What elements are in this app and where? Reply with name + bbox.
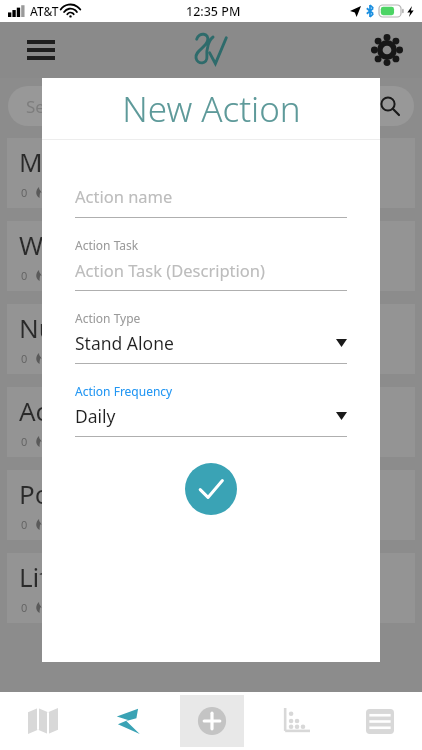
button[interactable]: Activity [7, 387, 415, 457]
button[interactable]: Settings [366, 29, 408, 71]
button[interactable]: Lifting [7, 553, 415, 623]
button[interactable]: Stats [254, 692, 338, 750]
staticText: Nutrition [19, 310, 130, 345]
button[interactable]: Stand Alone [75, 331, 347, 355]
button[interactable]: Actions [85, 692, 170, 750]
button[interactable]: Meditation [7, 138, 415, 208]
staticText: 12:35 PM [186, 3, 241, 20]
staticText: Action Frequency [75, 383, 173, 399]
staticText: 0 [21, 185, 28, 200]
button[interactable]: Walking [7, 221, 415, 291]
staticText: New Action [122, 85, 301, 133]
button[interactable]: Menu [24, 33, 58, 67]
staticText: 0 [21, 600, 28, 615]
button[interactable]: Map [0, 692, 85, 750]
staticText: 0 [21, 268, 28, 283]
staticText: Meditation [19, 144, 152, 179]
staticText: 0 [21, 434, 28, 449]
staticText: Activity [19, 393, 107, 428]
staticText: Stand Alone [75, 331, 174, 355]
staticText: Search [26, 95, 80, 118]
staticText: Posture [19, 476, 114, 511]
button[interactable]: Nutrition [7, 304, 415, 374]
staticText: 0 [21, 517, 28, 532]
button[interactable]: Posture [7, 470, 415, 540]
staticText: Lifting [19, 559, 97, 594]
staticText: Action Type [75, 310, 141, 326]
staticText: Walking [19, 227, 117, 262]
staticText: Daily [75, 404, 116, 428]
staticText: Action Task (Description) [75, 259, 265, 281]
staticText: 0 [21, 351, 28, 366]
button[interactable]: Confirm [185, 463, 237, 515]
button[interactable]: Daily [75, 404, 347, 428]
button[interactable]: Search [8, 86, 414, 126]
button[interactable]: Add [180, 695, 244, 747]
staticText: AT&T [30, 3, 59, 19]
staticText: Action name [75, 185, 173, 207]
staticText: Action Task [75, 237, 139, 253]
button[interactable]: List [338, 692, 422, 750]
